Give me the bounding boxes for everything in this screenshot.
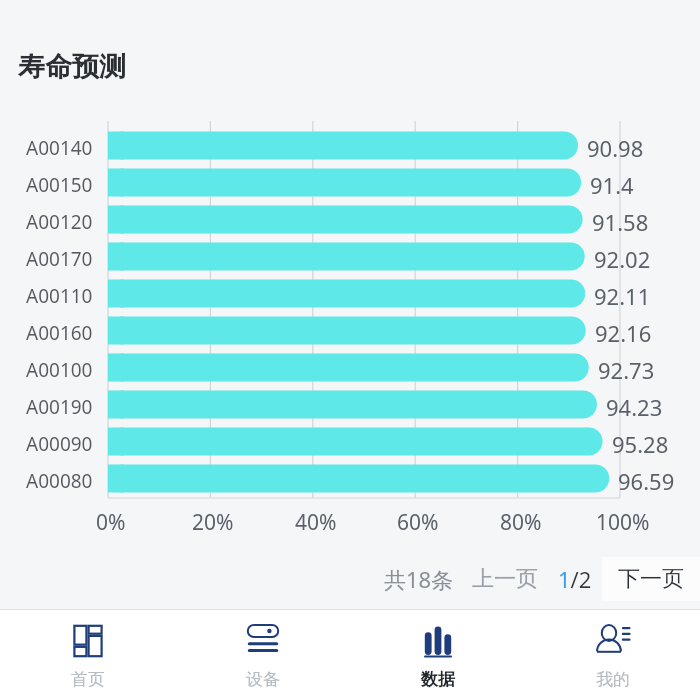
staticText: 95.28: [612, 429, 669, 459]
staticText: 寿命预测: [18, 50, 126, 84]
staticText: 92.02: [594, 244, 651, 274]
button[interactable]: 下一页: [602, 557, 700, 601]
button[interactable]: 首页: [0, 610, 175, 700]
staticText: 92.16: [595, 318, 652, 348]
staticText: 91.4: [590, 170, 634, 200]
staticText: 100%: [596, 508, 650, 537]
staticText: 40%: [295, 508, 337, 537]
staticText: 91.58: [592, 207, 649, 237]
staticText: 90.98: [587, 133, 644, 163]
staticText: A00120: [26, 209, 93, 235]
staticText: 共18条: [384, 564, 454, 594]
staticText: A00150: [26, 172, 93, 198]
staticText: 80%: [500, 508, 542, 537]
staticText: 上一页: [472, 565, 538, 593]
button[interactable]: 设备: [175, 610, 350, 700]
staticText: 94.23: [606, 392, 663, 422]
staticText: 96.59: [618, 466, 675, 496]
staticText: 我的: [596, 669, 630, 690]
staticText: 下一页: [618, 565, 684, 593]
staticText: A00110: [26, 283, 93, 309]
staticText: A00190: [26, 394, 93, 420]
staticText: 92.73: [598, 355, 655, 385]
staticText: 20%: [192, 508, 234, 537]
staticText: 数据: [421, 669, 455, 690]
staticText: 1/2: [558, 564, 592, 594]
button[interactable]: 1/2: [548, 558, 602, 600]
staticText: 92.11: [594, 281, 651, 311]
button[interactable]: 数据: [350, 610, 525, 700]
staticText: A00090: [26, 431, 93, 457]
staticText: A00170: [26, 246, 93, 272]
staticText: 首页: [71, 669, 105, 690]
staticText: 60%: [397, 508, 439, 537]
button[interactable]: 上一页: [462, 559, 548, 599]
staticText: A00160: [26, 320, 93, 346]
button[interactable]: 我的: [525, 610, 700, 700]
staticText: A00140: [26, 135, 93, 161]
staticText: 0%: [96, 508, 126, 537]
staticText: A00080: [26, 468, 93, 494]
staticText: 设备: [246, 669, 280, 690]
staticText: A00100: [26, 357, 93, 383]
